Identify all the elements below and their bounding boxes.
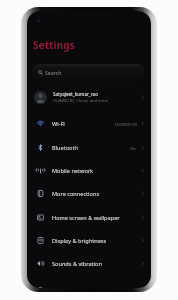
- other: Open account: [140, 95, 145, 100]
- staticText: Home screen & wallpaper: [52, 214, 137, 222]
- staticText: Satyajeet_kumar_rao: [53, 91, 98, 97]
- staticText: Display & brightness: [52, 237, 137, 245]
- button[interactable]: Display & brightness: [27, 229, 151, 252]
- button[interactable]: Home screen & wallpaper: [27, 206, 151, 229]
- staticText: Settings: [33, 38, 75, 52]
- staticText: More connections: [52, 190, 137, 198]
- button[interactable]: Mobile network: [27, 159, 151, 182]
- button[interactable]: Satyajeet_kumar_rao: [27, 86, 151, 109]
- staticText: Bluetooth: [52, 144, 130, 152]
- button[interactable]: Sounds & vibration: [27, 252, 151, 275]
- staticText: HONOR 9X: [115, 121, 137, 127]
- staticText: Search: [45, 69, 62, 76]
- button[interactable]: Search: [32, 64, 145, 81]
- staticText: HUAWEI ID, Cloud, and more: [53, 98, 109, 104]
- button[interactable]: Notifications: [27, 278, 151, 288]
- staticText: On: [130, 145, 137, 151]
- button[interactable]: Bluetooth: [27, 136, 151, 159]
- button[interactable]: More connections: [27, 182, 151, 205]
- staticText: Sounds & vibration: [52, 260, 137, 268]
- staticText: Wi-Fi: [52, 120, 115, 128]
- button[interactable]: Wi-Fi: [27, 112, 151, 135]
- staticText: Mobile network: [52, 167, 137, 175]
